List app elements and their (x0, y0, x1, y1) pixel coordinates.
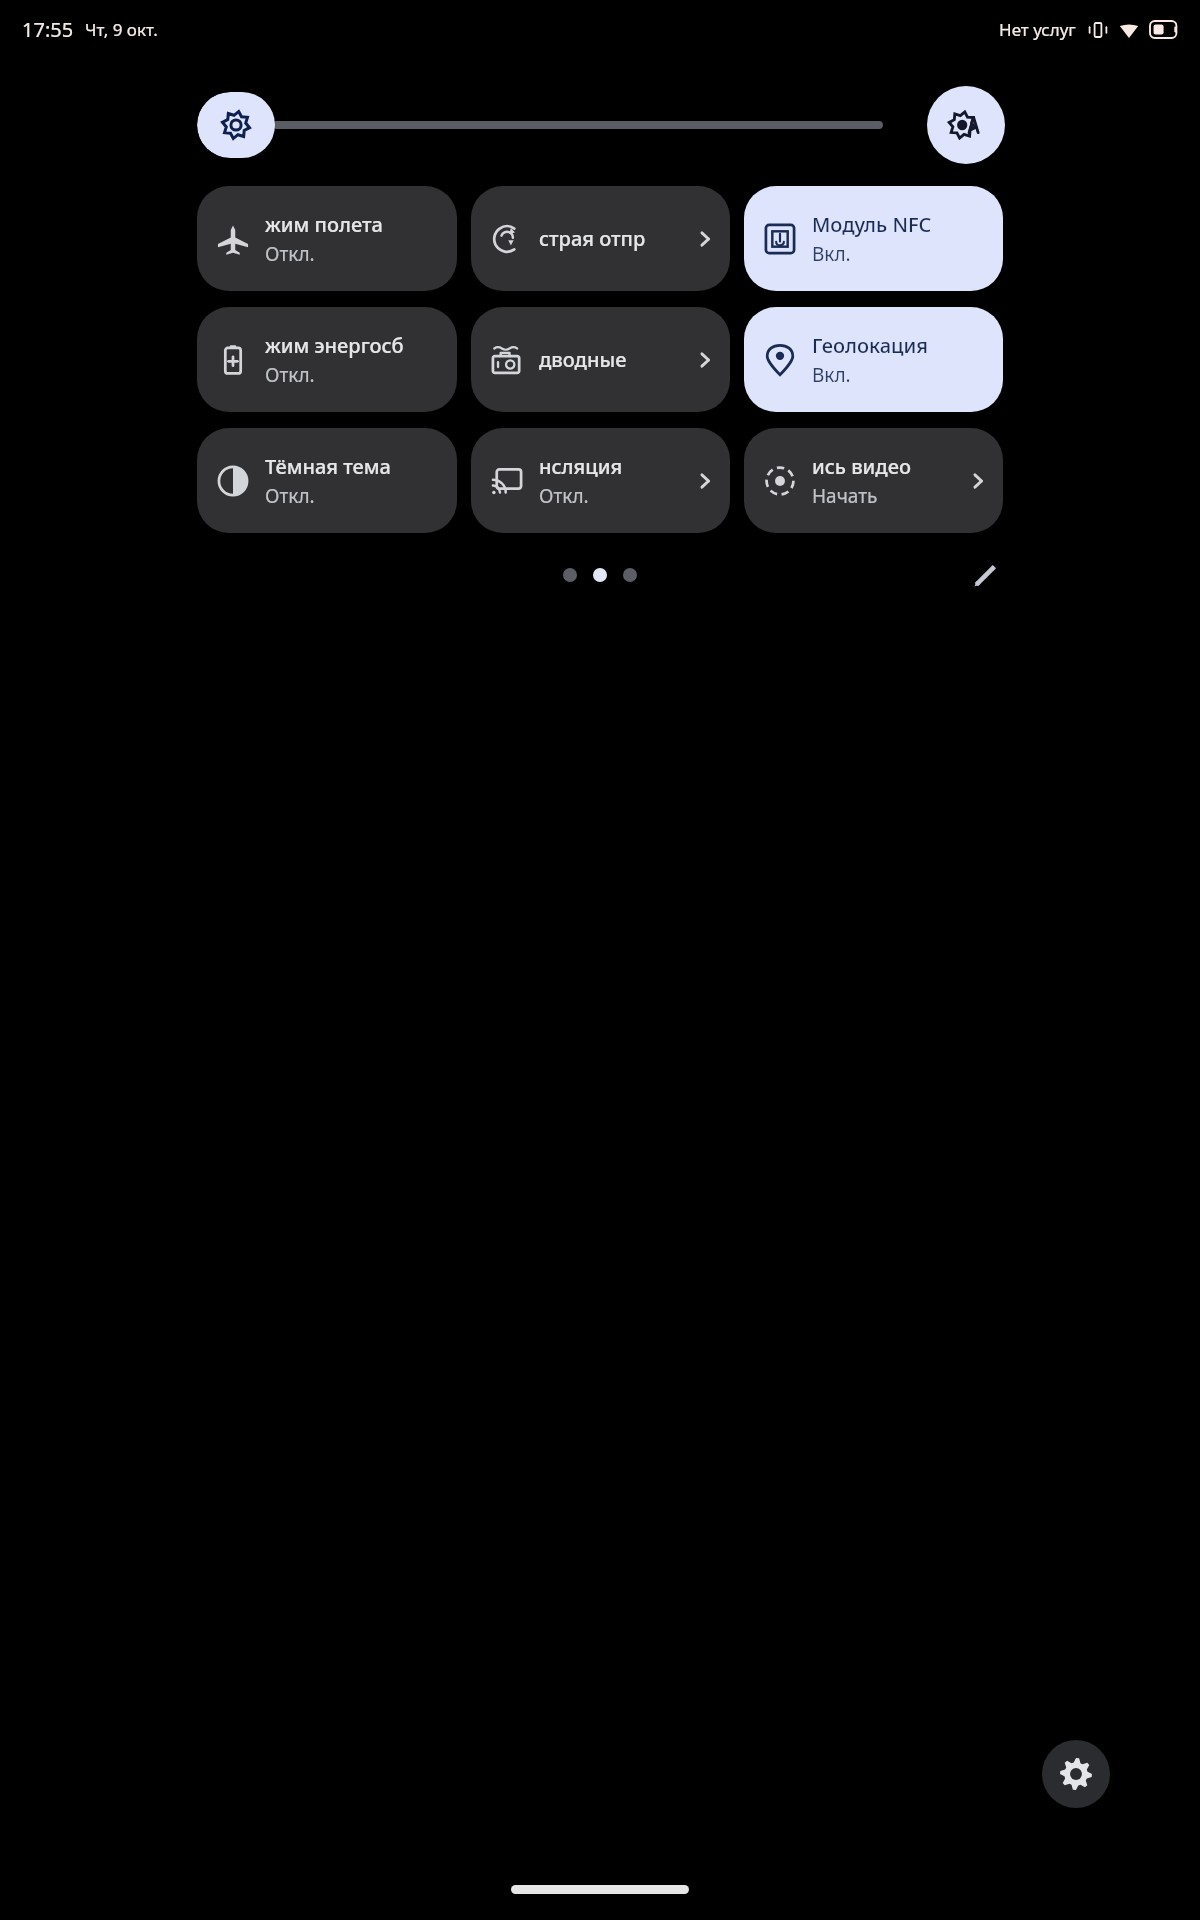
staticText: Вкл. (812, 362, 851, 388)
staticText: Нет услуг (999, 18, 1076, 41)
staticText: Откл. (265, 241, 315, 267)
button[interactable]: Settings (1042, 1740, 1110, 1808)
staticText: Модуль NFC (812, 211, 932, 238)
button[interactable]: Edit tiles (962, 551, 1010, 599)
staticText: жим полета (265, 211, 383, 238)
button[interactable]: Модуль NFC (744, 186, 1003, 291)
staticText: дводные (539, 346, 627, 373)
button[interactable]: страя отпр (471, 186, 730, 291)
button[interactable]: Auto brightness (927, 86, 1005, 164)
button[interactable]: Геолокация (744, 307, 1003, 412)
staticText: Откл. (539, 483, 589, 509)
staticText: ись видео (812, 453, 911, 480)
button[interactable]: жим полета (197, 186, 457, 291)
button[interactable]: жим энергосб (197, 307, 457, 412)
staticText: Откл. (265, 483, 315, 509)
staticText: страя отпр (539, 225, 646, 252)
staticText: нсляция (539, 453, 623, 480)
staticText: Откл. (265, 362, 315, 388)
button[interactable]: нсляция (471, 428, 730, 533)
button[interactable]: дводные (471, 307, 730, 412)
staticText: Тёмная тема (265, 453, 391, 480)
staticText: жим энергосб (265, 332, 404, 359)
button[interactable]: ись видео (744, 428, 1003, 533)
staticText: 17:55 (22, 16, 74, 43)
staticText: Геолокация (812, 332, 928, 359)
staticText: Чт, 9 окт. (85, 18, 158, 41)
button[interactable]: Brightness (197, 92, 883, 158)
staticText: Вкл. (812, 241, 851, 267)
button[interactable]: Тёмная тема (197, 428, 457, 533)
staticText: Начать (812, 483, 878, 509)
